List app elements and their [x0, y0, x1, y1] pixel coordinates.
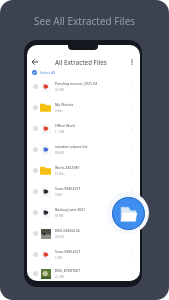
staticText: Pending invoice_2021-04 [55, 81, 98, 86]
staticText: Work-3452987 [55, 165, 80, 170]
button[interactable]: Work-3452987 [27, 160, 140, 181]
staticText: vacation places list [55, 144, 88, 149]
button[interactable]: IMG-58402236 [27, 223, 140, 244]
button[interactable]: Item options [128, 269, 137, 278]
button[interactable]: More options [127, 57, 137, 67]
staticText: My Movies [55, 102, 74, 107]
staticText: 2.4 MB [55, 88, 65, 92]
staticText: See All Extracted Files [34, 14, 136, 28]
button[interactable]: My Movies [27, 97, 140, 118]
staticText: 12 files [55, 172, 65, 176]
staticText: All Extracted Files [55, 58, 107, 66]
button[interactable]: Item options [128, 124, 137, 133]
button[interactable]: Item options [128, 208, 137, 217]
button[interactable]: Item options [128, 82, 137, 91]
button[interactable]: Scan-99454721 [27, 181, 140, 202]
button[interactable]: Open folder [112, 197, 145, 230]
staticText: 1.1 MB [55, 130, 65, 134]
button[interactable]: vacation places list [27, 139, 140, 160]
button[interactable]: Office Work [27, 118, 140, 139]
staticText: 1 MB [55, 256, 62, 260]
staticText: IMG_87887687 [55, 268, 81, 273]
button[interactable]: Item options [128, 187, 137, 196]
staticText: 5 files [55, 109, 63, 113]
button[interactable]: Item options [128, 250, 137, 259]
staticText: 3 MB [55, 193, 62, 197]
staticText: Backup June 2021 [55, 207, 86, 212]
button[interactable]: Backup June 2021 [27, 202, 140, 223]
staticText: Scan-95854321 [55, 249, 81, 254]
button[interactable]: Item options [128, 229, 137, 238]
staticText: 18 MB [55, 214, 64, 218]
staticText: Office Work [55, 123, 76, 128]
staticText: IMG-58402236 [55, 228, 80, 233]
button[interactable]: Pending invoice_2021-04 [27, 76, 140, 97]
button[interactable]: Back [30, 57, 40, 67]
staticText: 820 KB [55, 151, 65, 155]
button[interactable]: Item options [128, 103, 137, 112]
button[interactable]: Item options [128, 145, 137, 154]
staticText: 2.2 MB [55, 275, 65, 279]
staticText: Scan-99454721 [55, 186, 81, 191]
button[interactable]: Select All [27, 68, 140, 76]
button[interactable]: Item options [128, 166, 137, 175]
staticText: 420 KB [55, 235, 65, 239]
button[interactable]: IMG_87887687 [27, 265, 140, 281]
button[interactable]: Scan-95854321 [27, 244, 140, 265]
staticText: Select All [40, 70, 56, 75]
